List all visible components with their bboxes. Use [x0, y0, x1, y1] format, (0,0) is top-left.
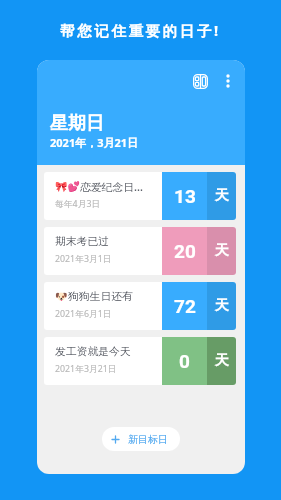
staticText: 🎀💕 — [55, 181, 80, 193]
staticText: 恋爱纪念日… — [80, 179, 143, 194]
staticText: 发工资就是今天 — [55, 345, 131, 359]
staticText: 🐶 — [55, 291, 68, 303]
staticText: 0 — [179, 350, 190, 372]
staticText: 2021年3月21日 — [55, 363, 117, 375]
staticText: 天 — [215, 187, 229, 205]
staticText: 星期日 — [50, 112, 104, 135]
staticText: 2021年6月1日 — [55, 308, 112, 320]
staticText: 帮您记住重要的日子! — [60, 20, 221, 40]
staticText: 每年4月3日 — [55, 198, 101, 210]
button[interactable]: 新目标日 — [102, 427, 180, 451]
staticText: 期末考已过 — [55, 235, 109, 249]
staticText: 72 — [174, 295, 196, 317]
button[interactable]: 🎀💕 — [44, 172, 236, 220]
staticText: 20 — [174, 240, 196, 262]
staticText: 2021年，3月21日 — [50, 135, 139, 150]
button[interactable]: 发工资就是今天 — [44, 337, 236, 385]
staticText: 2021年3月1日 — [55, 253, 112, 265]
staticText: 13 — [174, 185, 196, 207]
staticText: 狗狗生日还有 — [68, 290, 133, 304]
staticText: 天 — [215, 242, 229, 260]
button[interactable]: Change layout — [189, 70, 211, 92]
button[interactable]: 🐶 — [44, 282, 236, 330]
button[interactable]: 期末考已过 — [44, 227, 236, 275]
staticText: 天 — [215, 352, 229, 370]
button[interactable]: More options — [217, 70, 239, 92]
staticText: 新目标日 — [128, 433, 168, 446]
staticText: 天 — [215, 297, 229, 315]
